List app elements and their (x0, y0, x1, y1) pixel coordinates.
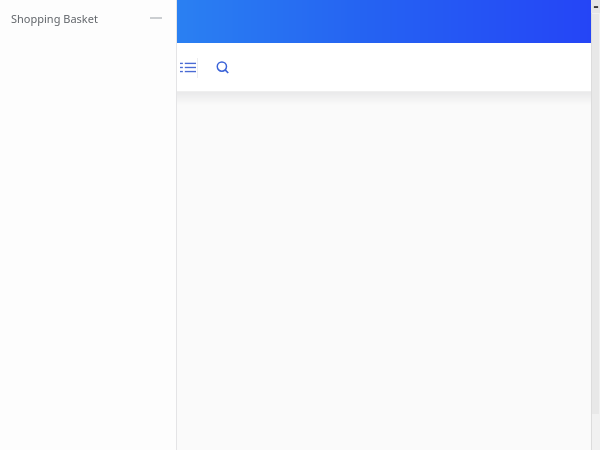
button[interactable] (177, 0, 591, 43)
button[interactable]: Minimize (143, 5, 169, 31)
button[interactable]: Search (208, 53, 238, 83)
button[interactable]: List view (177, 53, 199, 83)
button[interactable]: Scroll up (591, 0, 600, 13)
button[interactable]: Shopping Basket (0, 0, 177, 36)
staticText: Shopping Basket (11, 11, 98, 26)
